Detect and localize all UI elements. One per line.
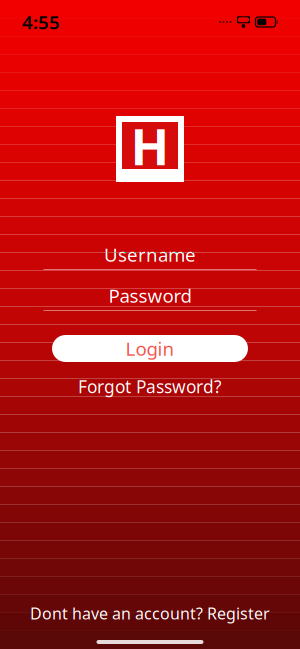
staticText: Dont have an account? Register <box>30 603 270 624</box>
button[interactable]: Dont have an account? Register <box>16 597 284 630</box>
button[interactable]: Username <box>43 243 256 270</box>
staticText: 4:55 <box>22 10 60 34</box>
staticText: H <box>130 112 169 179</box>
button[interactable]: Password <box>43 284 256 311</box>
button[interactable]: Login <box>52 335 248 362</box>
staticText: Login <box>125 336 174 361</box>
staticText: Username <box>104 242 196 267</box>
staticText: Password <box>108 283 191 308</box>
staticText: Forgot Password? <box>78 375 222 398</box>
button[interactable]: Forgot Password? <box>68 370 232 403</box>
